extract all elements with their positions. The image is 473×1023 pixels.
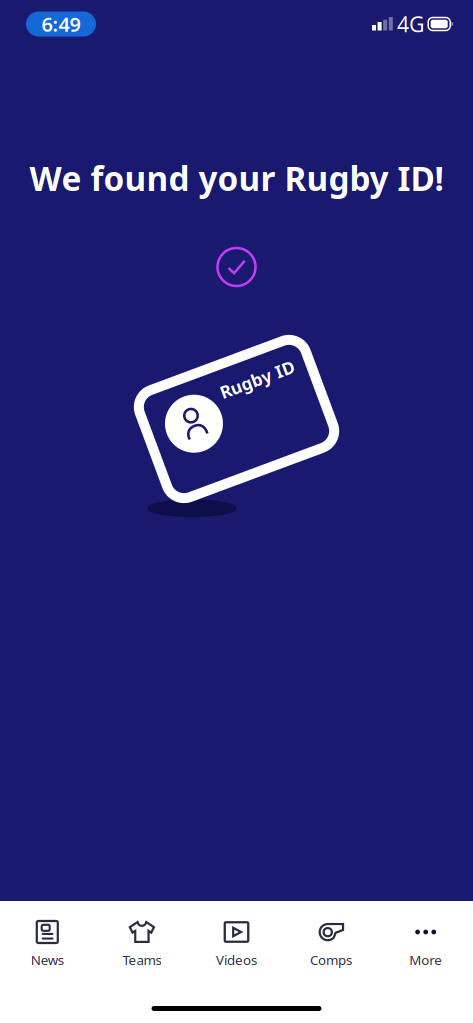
staticText: 6:49 [41,11,80,37]
staticText: Rugby ID [230,377,309,400]
button[interactable]: Videos [189,921,284,975]
staticText: More [409,951,442,969]
staticText: Comps [310,951,352,969]
staticText: News [31,951,64,969]
staticText: 4G [397,10,425,38]
staticText: Teams [122,951,161,969]
button[interactable]: More [378,921,473,975]
button[interactable]: News [0,921,95,975]
staticText: We found your Rugby ID! [29,156,443,200]
button[interactable]: Teams [95,921,189,975]
button[interactable]: Comps [284,921,378,975]
staticText: Videos [216,951,257,969]
